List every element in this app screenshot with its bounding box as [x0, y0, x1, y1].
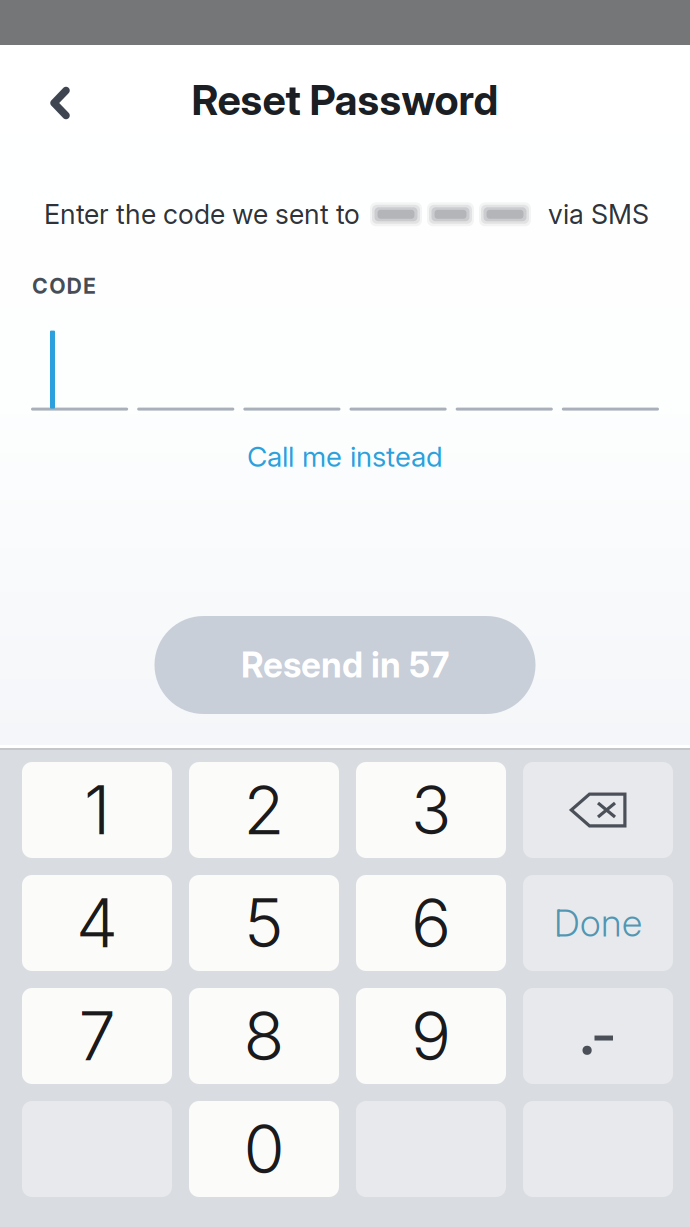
button[interactable]: 2	[189, 762, 339, 858]
button[interactable]: 5	[189, 875, 339, 971]
button[interactable]: 4	[22, 875, 172, 971]
button[interactable]: 9	[356, 988, 506, 1084]
staticText: 7	[78, 996, 115, 1076]
staticText: 3	[411, 770, 451, 850]
staticText: CODE	[32, 273, 96, 299]
staticText: 5	[244, 883, 284, 963]
staticText: 9	[411, 996, 451, 1076]
staticText: Done	[554, 900, 642, 946]
button[interactable]: Resend in 57	[154, 616, 535, 714]
button[interactable]: 8	[189, 988, 339, 1084]
staticText: Enter the code we sent to	[44, 198, 360, 231]
staticText: 0	[243, 1109, 284, 1189]
staticText: 1	[84, 770, 110, 850]
staticText: 2	[243, 770, 284, 850]
button[interactable]: 7	[22, 988, 172, 1084]
button[interactable]: 3	[356, 762, 506, 858]
button[interactable]: Punctuation	[523, 988, 673, 1084]
staticText: Reset Password	[191, 75, 498, 125]
button[interactable]: 1	[22, 762, 172, 858]
button[interactable]: 6	[356, 875, 506, 971]
staticText: 6	[411, 883, 451, 963]
staticText: 4	[76, 883, 118, 963]
staticText: 8	[243, 996, 284, 1076]
button[interactable]: Back	[0, 61, 94, 133]
button[interactable]: Call me instead	[223, 412, 467, 485]
staticText: via SMS	[548, 198, 649, 231]
button[interactable]: 0	[189, 1101, 339, 1197]
staticText: Resend in 57	[241, 644, 449, 686]
button[interactable]: Delete	[523, 762, 673, 858]
staticText: Call me instead	[247, 440, 443, 473]
button[interactable]	[523, 875, 673, 971]
